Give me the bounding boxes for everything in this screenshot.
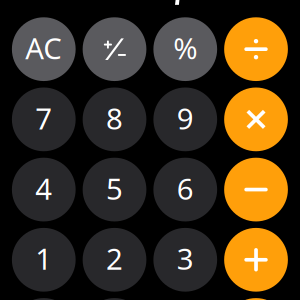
button[interactable]: . xyxy=(83,298,146,300)
button[interactable]: 0 xyxy=(12,298,76,300)
button[interactable]: 9 xyxy=(153,87,217,151)
staticText: 2 xyxy=(106,239,123,278)
button[interactable]: Plus or minus xyxy=(83,17,146,81)
staticText: % xyxy=(173,28,197,67)
button[interactable]: Multiply xyxy=(224,87,288,151)
button[interactable]: 8 xyxy=(83,87,146,151)
staticText: AC xyxy=(25,28,62,67)
staticText: 1 xyxy=(35,239,52,278)
button[interactable]: = xyxy=(224,298,288,300)
button[interactable]: 7 xyxy=(12,87,76,151)
button[interactable]: Plus xyxy=(224,228,288,292)
button[interactable]: 4 xyxy=(12,158,76,221)
button[interactable]: % xyxy=(153,17,217,81)
staticText: 5 xyxy=(106,169,123,208)
button[interactable]: 2 xyxy=(83,228,146,292)
button[interactable]: 1 xyxy=(12,228,76,292)
staticText: 6 xyxy=(177,169,194,208)
staticText: 8 xyxy=(106,99,123,138)
button[interactable]: 3 xyxy=(153,228,217,292)
staticText: 9 xyxy=(177,99,194,138)
staticText: 7 xyxy=(35,99,52,138)
button[interactable]: Minus xyxy=(224,158,288,221)
staticText: 3 xyxy=(177,239,194,278)
staticText: 4 xyxy=(35,169,52,208)
button[interactable]: 5 xyxy=(83,158,146,221)
button[interactable]: 6 xyxy=(153,158,217,221)
button[interactable]: AC xyxy=(12,17,76,81)
button[interactable]: Divide xyxy=(224,17,288,81)
